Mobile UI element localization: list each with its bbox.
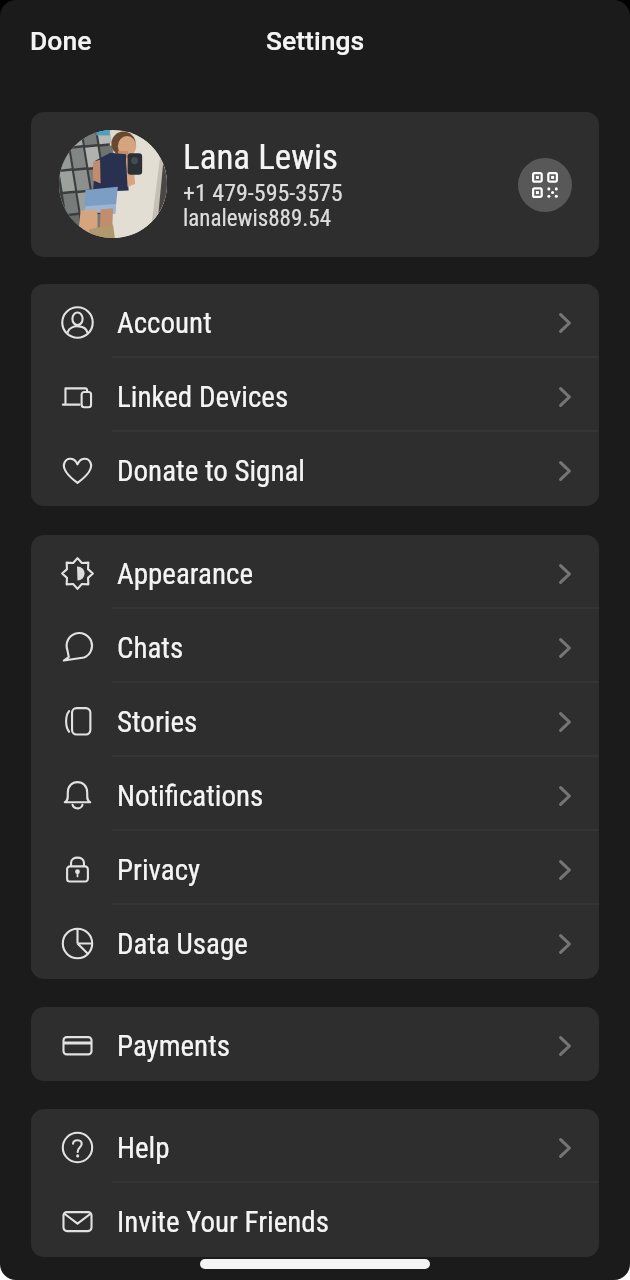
- staticText: Notifications: [117, 779, 264, 813]
- staticText: Account: [117, 306, 212, 340]
- button[interactable]: Chats: [31, 609, 599, 683]
- button[interactable]: Account: [31, 284, 599, 358]
- button[interactable]: Appearance: [31, 535, 599, 609]
- button[interactable]: Stories: [31, 683, 599, 757]
- button[interactable]: Help: [31, 1109, 599, 1183]
- button[interactable]: Data Usage: [31, 905, 599, 979]
- button[interactable]: Payments: [31, 1007, 599, 1081]
- button[interactable]: Donate to Signal: [31, 432, 599, 506]
- staticText: Linked Devices: [117, 380, 289, 414]
- button[interactable]: Privacy: [31, 831, 599, 905]
- staticText: lanalewis889.54: [183, 205, 332, 232]
- staticText: Stories: [117, 705, 198, 739]
- staticText: Chats: [117, 631, 184, 665]
- button[interactable]: Notifications: [31, 757, 599, 831]
- staticText: Appearance: [117, 557, 254, 591]
- button[interactable]: Invite Your Friends: [31, 1183, 599, 1257]
- staticText: Privacy: [117, 853, 201, 887]
- staticText: Payments: [117, 1029, 230, 1063]
- button[interactable]: Done: [15, 15, 107, 66]
- staticText: Settings: [266, 25, 365, 56]
- staticText: Lana Lewis: [183, 137, 338, 178]
- staticText: +1 479-595-3575: [183, 179, 343, 207]
- staticText: Donate to Signal: [117, 454, 305, 488]
- staticText: Data Usage: [117, 927, 248, 961]
- button[interactable]: Lana Lewis: [31, 112, 599, 257]
- button[interactable]: Linked Devices: [31, 358, 599, 432]
- staticText: Invite Your Friends: [117, 1205, 329, 1239]
- button[interactable]: Show QR code: [518, 158, 572, 212]
- staticText: Help: [117, 1131, 170, 1165]
- staticText: Done: [30, 25, 92, 56]
